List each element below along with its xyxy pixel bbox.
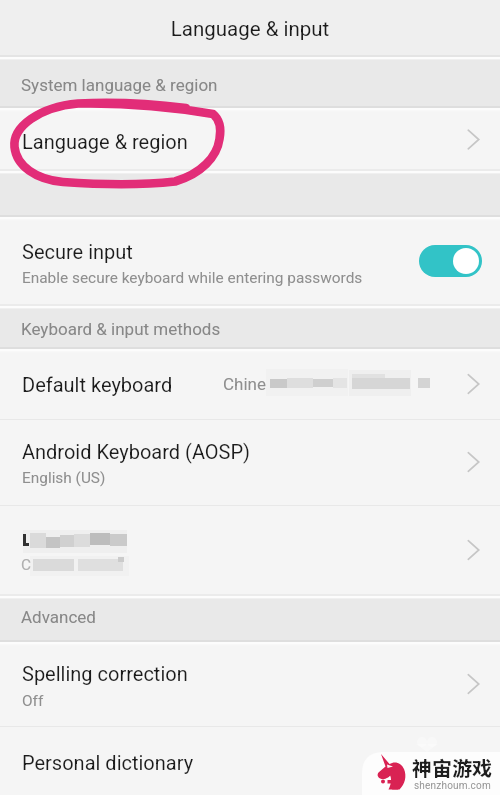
staticText: Default keyboard: [22, 373, 173, 396]
staticText: English (US): [22, 469, 106, 487]
staticText: Off: [22, 692, 44, 710]
staticText: Language & input: [0, 17, 500, 41]
button[interactable]: Spelling correction: [0, 642, 500, 726]
button[interactable]: Secure input toggle: [419, 245, 482, 277]
button[interactable]: Default keyboard: [0, 349, 500, 419]
button[interactable]: C: [0, 505, 500, 596]
button[interactable]: Secure input: [0, 217, 500, 306]
button[interactable]: Language & region: [0, 108, 500, 171]
staticText: Chines: [223, 374, 275, 394]
staticText: System language & region: [21, 75, 218, 95]
staticText: 神宙游戏: [412, 753, 492, 782]
staticText: Language & region: [22, 130, 188, 153]
button[interactable]: Android Keyboard (AOSP): [0, 419, 500, 505]
staticText: Secure input: [22, 240, 133, 263]
staticText: C: [21, 556, 32, 574]
staticText: Keyboard & input methods: [21, 319, 221, 339]
staticText: Android Keyboard (AOSP): [22, 440, 251, 463]
staticText: Spelling correction: [22, 662, 188, 685]
staticText: Enable secure keyboard while entering pa…: [22, 269, 363, 287]
staticText: shenzhoum.com: [414, 780, 491, 792]
button[interactable]: Personal dictionary: [0, 726, 500, 795]
staticText: Personal dictionary: [22, 751, 194, 774]
staticText: Advanced: [21, 607, 96, 627]
